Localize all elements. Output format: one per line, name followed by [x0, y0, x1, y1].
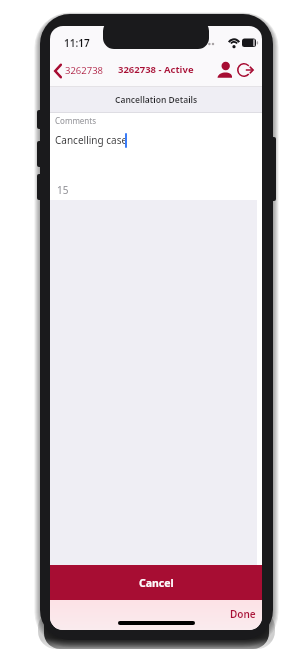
staticText: Cancelling case: [55, 133, 128, 147]
button[interactable]: [237, 59, 257, 79]
staticText: Cancellation Details: [115, 94, 198, 106]
button[interactable]: Cancelling case: [55, 131, 253, 148]
staticText: 3262738 - Active: [118, 63, 194, 76]
button[interactable]: Done: [226, 605, 260, 623]
staticText: 3262738: [65, 64, 104, 77]
staticText: Done: [230, 607, 256, 621]
staticText: 15: [57, 183, 69, 197]
button[interactable]: [216, 59, 236, 79]
staticText: 11:17: [64, 36, 90, 50]
staticText: Comments: [55, 115, 97, 126]
button[interactable]: 3262738: [51, 58, 109, 82]
staticText: Cancel: [139, 576, 174, 590]
button[interactable]: Cancel: [50, 565, 262, 600]
